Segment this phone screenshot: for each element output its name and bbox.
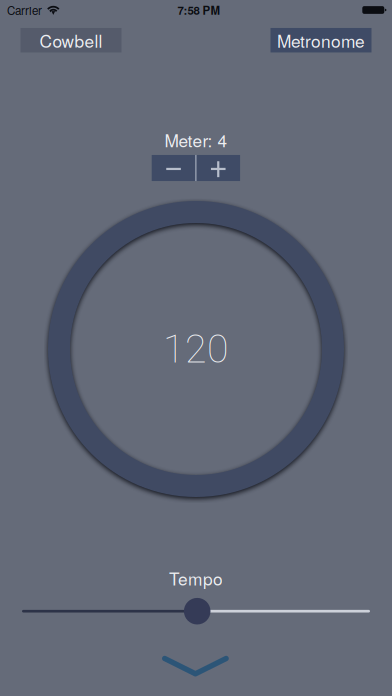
button[interactable]: Metronome — [270, 28, 371, 52]
button[interactable]: Tempo — [22, 597, 370, 625]
button[interactable]: Cowbell — [20, 28, 121, 52]
staticText: Meter: 4 — [164, 127, 227, 152]
button[interactable]: Increase meter — [196, 155, 240, 181]
staticText: Tempo — [169, 566, 223, 590]
staticText: Cowbell — [39, 28, 102, 53]
staticText: 7:58 PM — [177, 2, 220, 18]
staticText: Metronome — [277, 28, 365, 53]
staticText: Carrier — [7, 2, 42, 18]
staticText: 120 — [163, 326, 229, 372]
button[interactable]: Decrease meter — [152, 155, 195, 181]
button[interactable]: Collapse — [162, 656, 229, 677]
